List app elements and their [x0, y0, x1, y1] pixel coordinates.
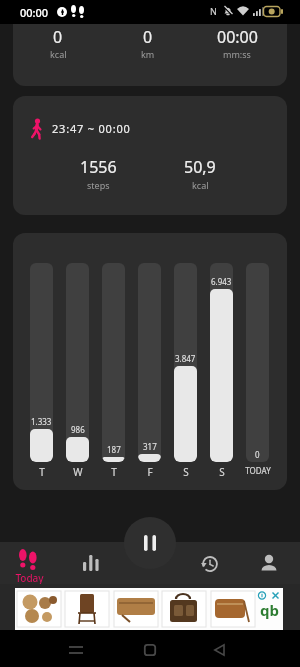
staticText: kcal — [50, 48, 67, 60]
staticText: 0 — [255, 449, 260, 460]
staticText: 0 — [53, 26, 63, 48]
staticText: kcal — [192, 179, 209, 191]
button[interactable] — [124, 517, 176, 569]
button[interactable] — [214, 644, 225, 656]
staticText: Today — [15, 571, 44, 585]
staticText: steps — [87, 179, 110, 191]
staticText: S — [183, 465, 189, 479]
button[interactable]: 187 — [102, 263, 125, 462]
button[interactable]: 986 — [66, 263, 89, 462]
staticText: 187 — [107, 444, 121, 455]
staticText: qb — [260, 600, 279, 620]
staticText: 3.847 — [175, 353, 196, 364]
staticText: km — [141, 48, 155, 60]
button[interactable]: 23:47 ~ 00:00 — [13, 96, 287, 215]
staticText: 1.333 — [31, 416, 52, 427]
staticText: 0 — [143, 26, 153, 48]
staticText: 1556 — [80, 156, 117, 178]
staticText: 50,9 — [184, 156, 216, 178]
button[interactable] — [69, 645, 83, 655]
button[interactable]: 0 — [13, 24, 287, 86]
button[interactable]: 1.333 — [30, 263, 53, 462]
staticText: 00:00 — [20, 5, 49, 20]
button[interactable] — [188, 546, 232, 584]
staticText: S — [219, 465, 225, 479]
staticText: 986 — [71, 424, 85, 435]
button[interactable]: qb — [15, 588, 283, 630]
staticText: TODAY — [245, 465, 271, 476]
button[interactable]: Today — [8, 544, 52, 584]
staticText: 00:00 — [217, 26, 258, 48]
staticText: 317 — [143, 441, 157, 452]
button[interactable] — [69, 546, 113, 584]
staticText: 6.943 — [211, 276, 232, 287]
staticText: 23:47 ~ 00:00 — [52, 121, 131, 136]
staticText: F — [147, 465, 153, 479]
staticText: N — [210, 5, 217, 17]
staticText: mm:ss — [223, 48, 251, 60]
button[interactable]: 317 — [138, 263, 161, 462]
staticText: T — [111, 465, 117, 479]
button[interactable] — [144, 644, 156, 656]
button[interactable]: 3.847 — [174, 263, 197, 462]
button[interactable] — [247, 546, 291, 584]
staticText: W — [73, 465, 83, 479]
button[interactable]: 6.943 — [210, 263, 233, 462]
button[interactable]: 0 — [246, 263, 269, 462]
staticText: T — [39, 465, 45, 479]
